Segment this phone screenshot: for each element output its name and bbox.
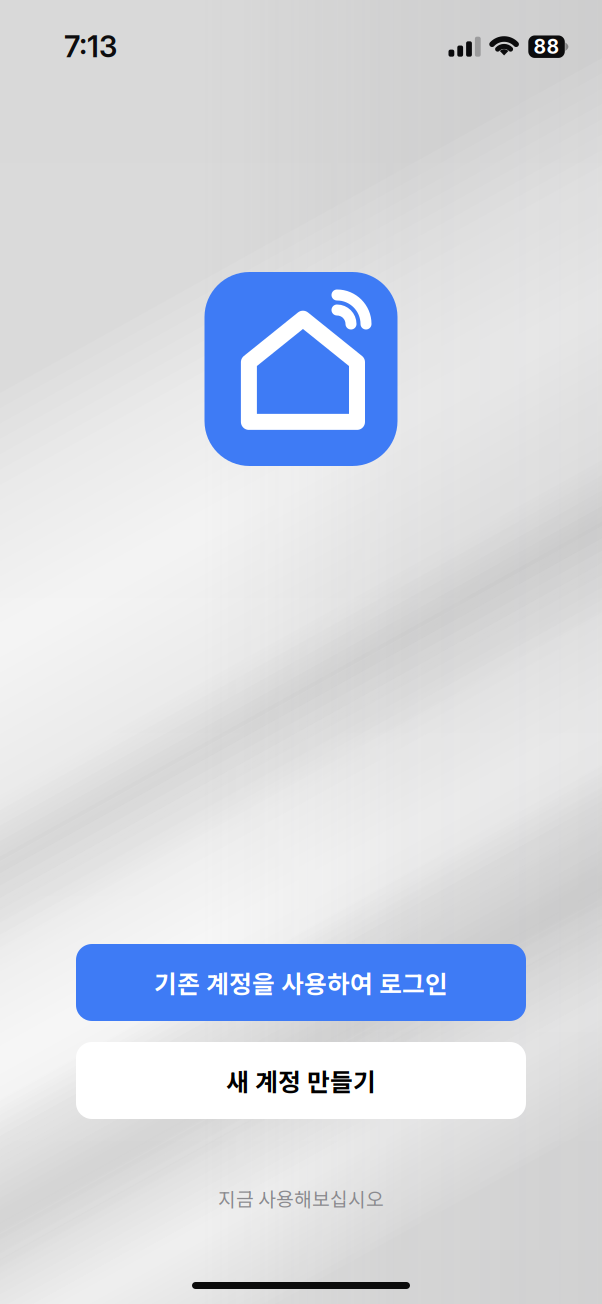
- staticText: 새 계정 만들기: [226, 1063, 376, 1098]
- staticText: 7:13: [64, 29, 117, 64]
- button[interactable]: 기존 계정을 사용하여 로그인: [76, 944, 526, 1021]
- staticText: 기존 계정을 사용하여 로그인: [154, 965, 448, 1000]
- staticText: 88: [533, 35, 559, 58]
- button[interactable]: 지금 사용해보십시오: [192, 1170, 410, 1226]
- staticText: 지금 사용해보십시오: [218, 1184, 384, 1212]
- button[interactable]: 새 계정 만들기: [76, 1042, 526, 1119]
